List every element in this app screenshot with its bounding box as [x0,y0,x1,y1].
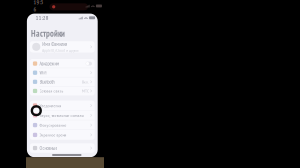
staticText: Уведомления [39,103,61,108]
button[interactable]: Сотовая связь [30,86,95,95]
staticText: Имя Фамилия [42,41,67,47]
staticText: Экранное время [39,132,66,138]
staticText: МТС [82,88,89,94]
staticText: Bluetooth [39,79,54,85]
button[interactable]: Звуки, тактильные сигналы [30,110,95,120]
staticText: 19:36 [33,0,43,13]
staticText: Apple ID, iCloud и другое [42,48,78,53]
staticText: Звуки, тактильные сигналы [39,112,83,118]
staticText: Основные [39,145,57,151]
staticText: Wi-Fi [39,69,47,76]
staticText: Авиарежим [39,60,59,67]
button[interactable]: Уведомления [30,101,95,110]
staticText: Фокусирование [39,122,66,128]
button[interactable]: Bluetooth [30,77,95,86]
button[interactable]: Основные [30,143,95,153]
staticText: Настройки [31,28,65,39]
button[interactable]: Авиарежим [30,59,95,68]
staticText: Вкл. [82,79,89,85]
button[interactable]: Экранное время [30,130,95,140]
staticText: Сотовая связь [39,88,63,94]
staticText: 11:28 [36,14,49,21]
button[interactable]: Фокусирование [30,120,95,130]
button[interactable]: Имя Фамилия [30,41,95,52]
button[interactable]: Wi-Fi [30,68,95,77]
